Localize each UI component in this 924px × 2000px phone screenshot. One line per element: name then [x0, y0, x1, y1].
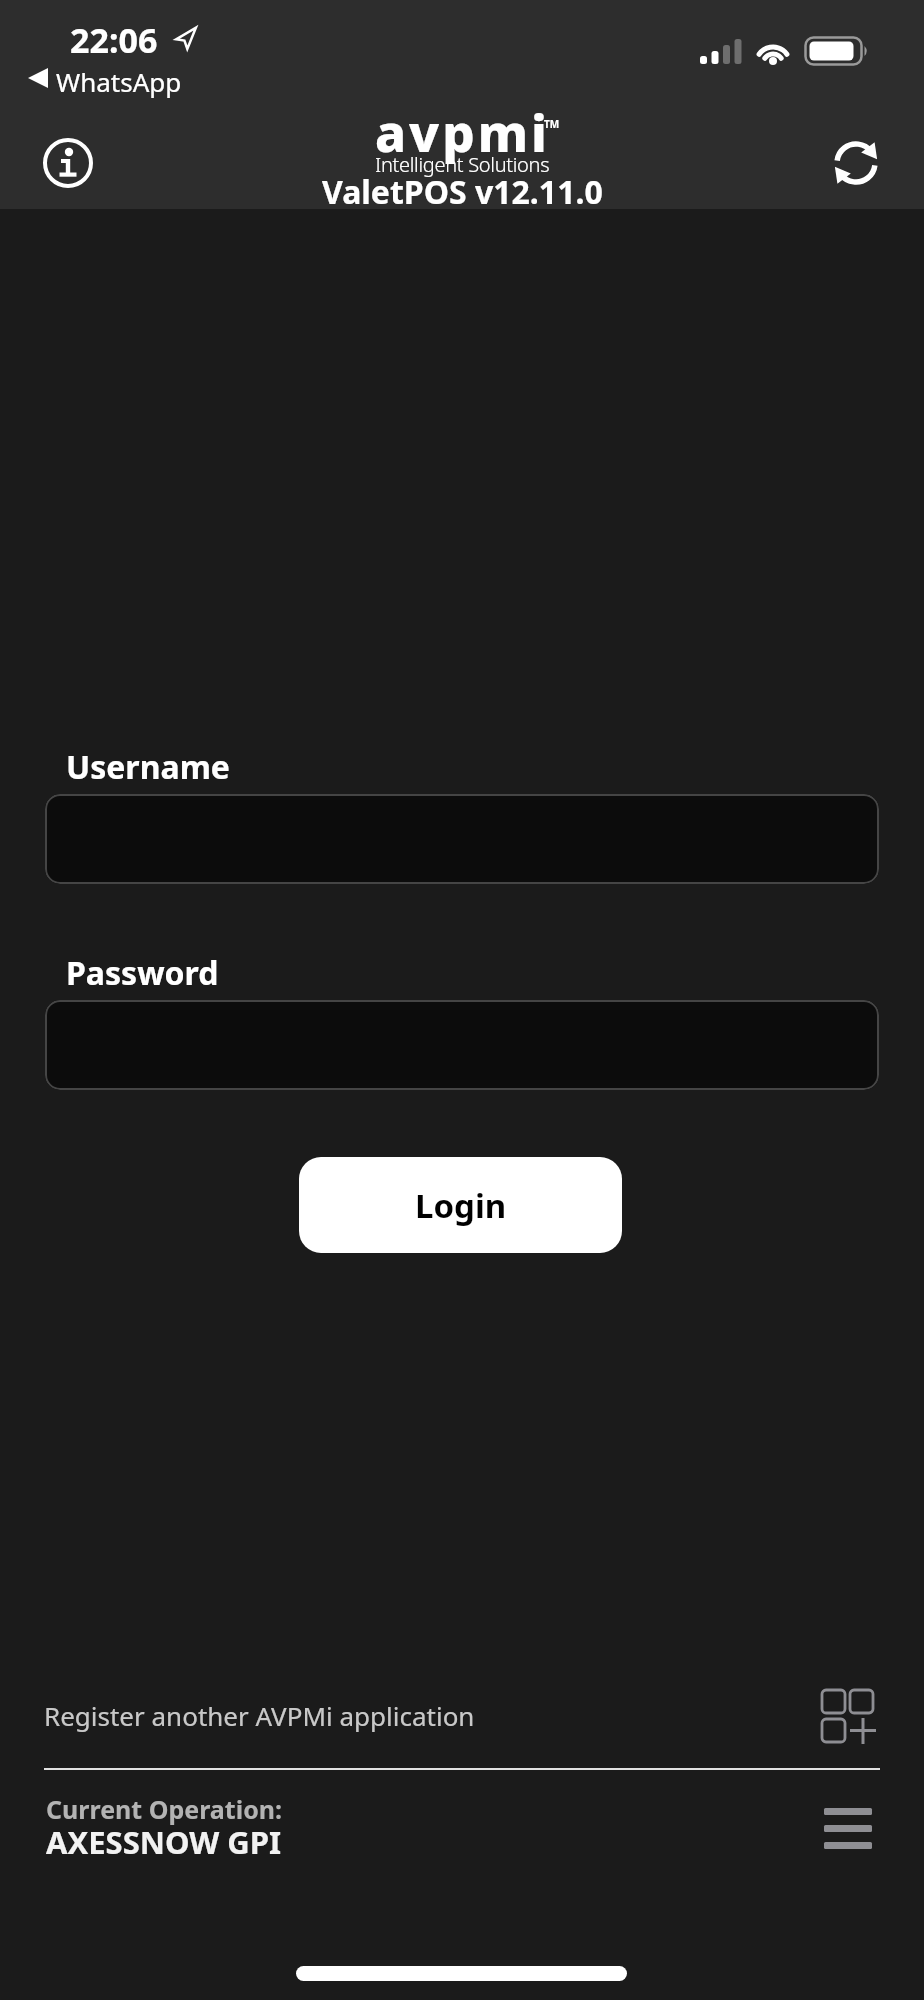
button[interactable]	[45, 1000, 879, 1090]
staticText: TM	[544, 117, 560, 131]
button[interactable]	[826, 133, 886, 193]
staticText: Username	[66, 745, 230, 789]
button[interactable]	[45, 794, 879, 884]
staticText: avpmi	[375, 97, 550, 166]
staticText: ValetPOS v12.11.0	[322, 170, 603, 214]
staticText: Intelligent Solutions	[375, 151, 550, 178]
staticText: Current Operation:	[46, 1792, 283, 1826]
button[interactable]	[814, 1682, 880, 1748]
staticText: Password	[66, 951, 219, 995]
staticText: Login	[415, 1183, 507, 1228]
staticText: AXESSNOW GPI	[46, 1821, 281, 1863]
button[interactable]	[816, 1796, 880, 1860]
button[interactable]: Register another AVPMi application	[30, 1680, 670, 1750]
staticText: WhatsApp	[56, 64, 182, 99]
staticText: Register another AVPMi application	[44, 1698, 475, 1733]
staticText: 22:06	[70, 17, 158, 63]
button[interactable]	[38, 133, 98, 193]
button[interactable]: Login	[299, 1157, 622, 1253]
